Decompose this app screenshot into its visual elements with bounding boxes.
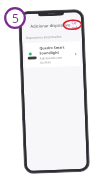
staticText: 5 [12,10,19,26]
button[interactable]: Step 5 [4,7,26,29]
button[interactable]: Quadro Smart Soundlight [24,41,81,68]
staticText: Concluir [71,20,78,29]
staticText: Adicionar dispositivo [30,22,71,29]
button[interactable]: Concluir [70,19,79,30]
staticText: Dispositivos encontrados [26,35,62,40]
staticText: Quadro Smart Soundlight [39,44,74,55]
staticText: Adicionado com sucesso [40,55,74,64]
other: Open device [73,52,78,56]
